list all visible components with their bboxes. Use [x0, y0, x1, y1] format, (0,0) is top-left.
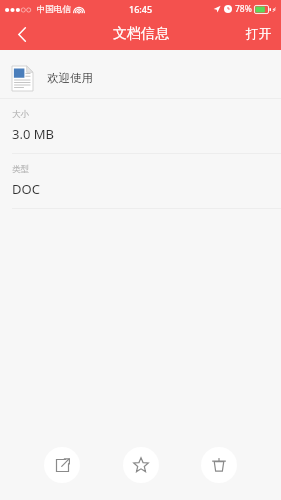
staticText: DOC: [12, 180, 40, 198]
button[interactable]: 返回: [0, 18, 44, 50]
staticText: ⚡: [272, 6, 277, 13]
staticText: 类型: [12, 164, 29, 175]
button[interactable]: 类型: [0, 154, 281, 208]
button[interactable]: 打开: [236, 18, 281, 50]
staticText: 大小: [12, 109, 29, 120]
button[interactable]: 分享: [44, 447, 80, 483]
button[interactable]: 大小: [0, 99, 281, 153]
staticText: 中国电信: [37, 4, 71, 15]
staticText: 欢迎使用: [47, 71, 93, 85]
staticText: 16:45: [129, 3, 153, 15]
staticText: 3.0 MB: [12, 125, 54, 143]
staticText: 打开: [246, 26, 271, 42]
button[interactable]: 欢迎使用: [0, 58, 281, 98]
button[interactable]: 删除: [201, 447, 237, 483]
staticText: 78%: [235, 3, 252, 15]
button[interactable]: 收藏: [123, 447, 159, 483]
staticText: 文档信息: [113, 25, 169, 43]
